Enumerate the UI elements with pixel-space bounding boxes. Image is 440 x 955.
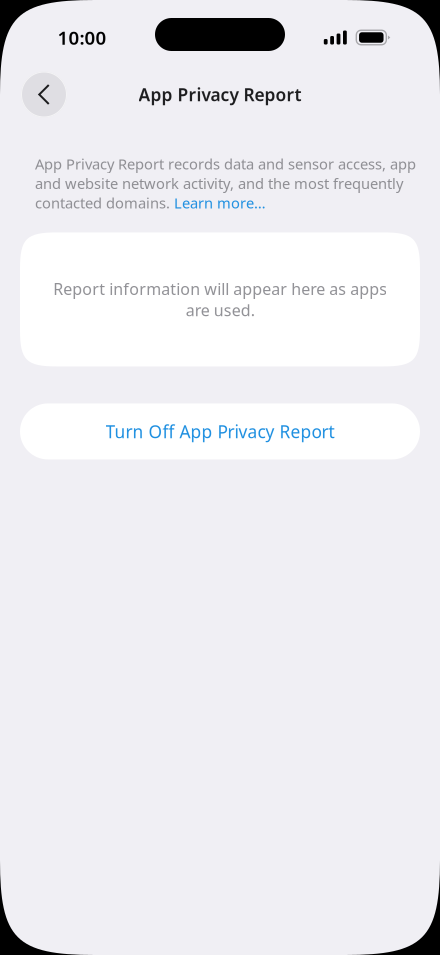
button[interactable]: Back xyxy=(21,71,67,117)
button[interactable]: Turn Off App Privacy Report xyxy=(20,403,420,459)
staticText: contacted domains. xyxy=(35,193,174,212)
button[interactable]: Learn more… xyxy=(174,193,266,212)
staticText: App Privacy Report xyxy=(138,83,301,106)
staticText: App Privacy Report records data and sens… xyxy=(35,154,416,193)
staticText: Report information will appear here as a… xyxy=(53,278,387,321)
staticText: 10:00 xyxy=(57,25,106,50)
staticText: Learn more… xyxy=(174,193,266,212)
staticText: Turn Off App Privacy Report xyxy=(105,420,334,443)
